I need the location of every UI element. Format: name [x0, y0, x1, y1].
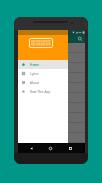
button[interactable]: Home: [18, 60, 68, 69]
staticText: Home: [30, 63, 40, 67]
button[interactable]: Recent apps: [68, 146, 73, 151]
button[interactable]: Back: [29, 146, 34, 151]
button[interactable]: Home: [48, 146, 53, 151]
staticText: About: [30, 81, 40, 85]
staticText: Rate This App: [30, 90, 51, 94]
button[interactable]: About: [18, 78, 68, 87]
staticText: Lyrics: [30, 72, 39, 76]
button[interactable]: Rate This App: [18, 87, 68, 96]
button[interactable]: Lyrics: [18, 69, 68, 78]
button[interactable]: Search: [77, 36, 83, 42]
